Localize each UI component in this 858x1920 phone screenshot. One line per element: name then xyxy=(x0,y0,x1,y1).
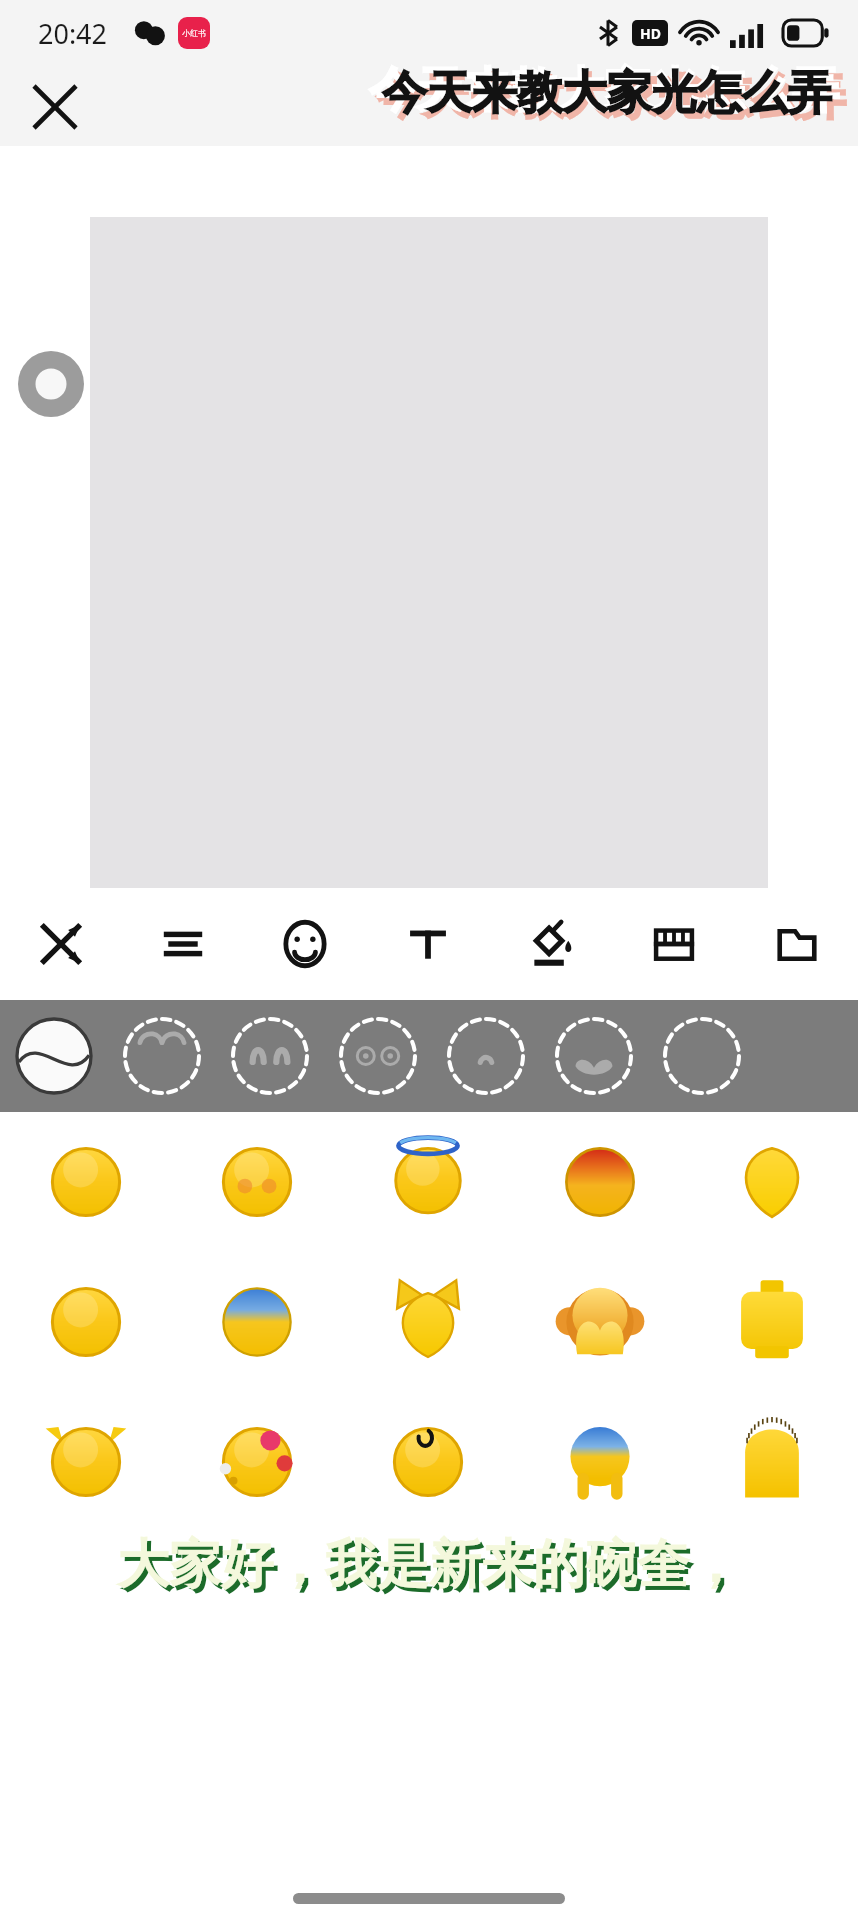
staticText: 今天来教大家光怎么弄 xyxy=(369,61,839,120)
button[interactable]: Feature 3 xyxy=(216,1000,324,1112)
button[interactable]: Sticker 1 xyxy=(0,1112,171,1252)
button[interactable]: Sticker 5 xyxy=(686,1112,858,1252)
button[interactable]: Sticker 6 xyxy=(0,1252,171,1392)
button[interactable]: Sticker 7 xyxy=(171,1252,342,1392)
staticText: 大家好，我是新来的碗奎， xyxy=(117,1532,741,1598)
button[interactable]: Feature 4 xyxy=(324,1000,432,1112)
button[interactable]: Shuffle xyxy=(0,888,122,1000)
button[interactable]: Sticker 15 xyxy=(686,1392,858,1532)
button[interactable]: Feature 1 xyxy=(0,1000,108,1112)
button[interactable]: Text xyxy=(366,888,489,1000)
button[interactable]: Sticker 13 xyxy=(342,1392,514,1532)
staticText: 小红书 xyxy=(182,28,206,38)
staticText: 20:42 xyxy=(38,15,108,52)
staticText: 今天来教大家光怎么弄 xyxy=(376,68,846,127)
button[interactable]: Feature 2 xyxy=(108,1000,216,1112)
button[interactable]: Store xyxy=(612,888,735,1000)
button[interactable]: Feature 5 xyxy=(432,1000,540,1112)
button[interactable]: Sticker 11 xyxy=(0,1392,171,1532)
button[interactable]: Sticker 4 xyxy=(514,1112,686,1252)
button[interactable]: Sticker 14 xyxy=(514,1392,686,1532)
button[interactable]: Emoji xyxy=(244,888,366,1000)
button[interactable]: Close xyxy=(22,74,88,140)
button[interactable]: Sticker 3 xyxy=(342,1112,514,1252)
staticText: 大家好，我是新来的碗奎， xyxy=(121,1536,745,1602)
other: Transform handle xyxy=(18,351,84,417)
button[interactable]: Files xyxy=(735,888,858,1000)
button[interactable]: Feature 6 xyxy=(540,1000,648,1112)
button[interactable]: Sticker 12 xyxy=(171,1392,342,1532)
staticText: HD xyxy=(640,24,661,43)
button[interactable]: Sticker 10 xyxy=(686,1252,858,1392)
button[interactable]: Feature 7 xyxy=(648,1000,756,1112)
button[interactable]: Sticker 8 xyxy=(342,1252,514,1392)
staticText: 今天来教大家光怎么弄 xyxy=(382,65,832,122)
button[interactable]: Fill xyxy=(489,888,612,1000)
button[interactable]: Sticker 2 xyxy=(171,1112,342,1252)
button[interactable]: Sticker 9 xyxy=(514,1252,686,1392)
button[interactable]: Adjust xyxy=(122,888,244,1000)
